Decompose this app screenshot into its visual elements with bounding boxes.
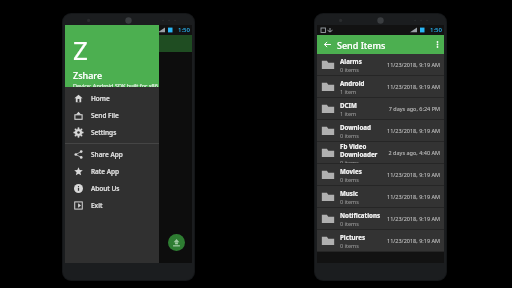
staticText: Music: [340, 189, 359, 197]
staticText: 11/23/2018, 9:19 AM: [386, 83, 440, 90]
staticText: 1 item: [340, 88, 357, 95]
staticText: Home: [91, 94, 110, 103]
staticText: 0 items: [340, 66, 359, 73]
staticText: About Us: [91, 184, 120, 193]
staticText: Alarms: [340, 57, 362, 65]
staticText: 0 items: [340, 220, 359, 227]
button[interactable]: Rate App: [65, 163, 159, 180]
staticText: Notifications: [340, 211, 381, 219]
button[interactable]: Fb Video Downloader: [321, 142, 440, 163]
staticText: Exit: [91, 201, 103, 210]
button[interactable]: Share App: [65, 146, 159, 163]
staticText: Zshare: [73, 69, 103, 81]
button[interactable]: Movies: [321, 164, 440, 185]
staticText: 11/23/2018, 9:19 AM: [386, 237, 440, 244]
staticText: 11/23/2018, 9:19 AM: [386, 193, 440, 200]
button[interactable]: About Us: [65, 180, 159, 197]
button[interactable]: More options: [430, 35, 444, 54]
staticText: 11/23/2018, 9:19 AM: [386, 61, 440, 68]
staticText: 11/23/2018, 9:19 AM: [386, 127, 440, 134]
staticText: 2 days ago, 4:40 AM: [388, 149, 440, 156]
staticText: 11/23/2018, 9:19 AM: [386, 171, 440, 178]
staticText: Z: [73, 32, 88, 67]
staticText: Rate App: [91, 167, 120, 176]
staticText: DCIM: [340, 101, 357, 109]
button[interactable]: Send File: [65, 107, 159, 124]
staticText: Device: Android SDK built for x86: [73, 82, 158, 87]
staticText: 1:50: [430, 26, 442, 34]
staticText: Settings: [91, 128, 117, 137]
button[interactable]: Home: [65, 90, 159, 107]
button[interactable]: Exit: [65, 197, 159, 214]
staticText: Pictures: [340, 233, 366, 241]
staticText: Send Items: [337, 39, 430, 51]
button[interactable]: Pictures: [321, 230, 440, 251]
staticText: 11/23/2018, 9:19 AM: [386, 215, 440, 222]
staticText: 0 items: [340, 198, 359, 205]
button[interactable]: Send: [168, 234, 185, 251]
staticText: 7 days ago, 6:24 PM: [388, 105, 440, 112]
staticText: Fb Video Downloader: [340, 142, 388, 158]
staticText: Share App: [91, 150, 123, 159]
button[interactable]: Android: [321, 76, 440, 97]
staticText: Android: [340, 79, 365, 87]
staticText: Movies: [340, 167, 362, 175]
button[interactable]: Alarms: [321, 54, 440, 75]
staticText: 1 item: [340, 110, 357, 117]
staticText: Download: [340, 123, 371, 131]
button[interactable]: Settings: [65, 124, 159, 141]
button[interactable]: Download: [321, 120, 440, 141]
button[interactable]: DCIM: [321, 98, 440, 119]
staticText: 0 items: [340, 159, 359, 163]
staticText: 0 items: [340, 132, 359, 139]
staticText: 1:50: [178, 26, 190, 34]
button[interactable]: Notifications: [321, 208, 440, 229]
staticText: 0 items: [340, 176, 359, 183]
staticText: 0 items: [340, 242, 359, 249]
staticText: Send File: [91, 111, 119, 120]
button[interactable]: Music: [321, 186, 440, 207]
button[interactable]: Back: [317, 35, 337, 54]
